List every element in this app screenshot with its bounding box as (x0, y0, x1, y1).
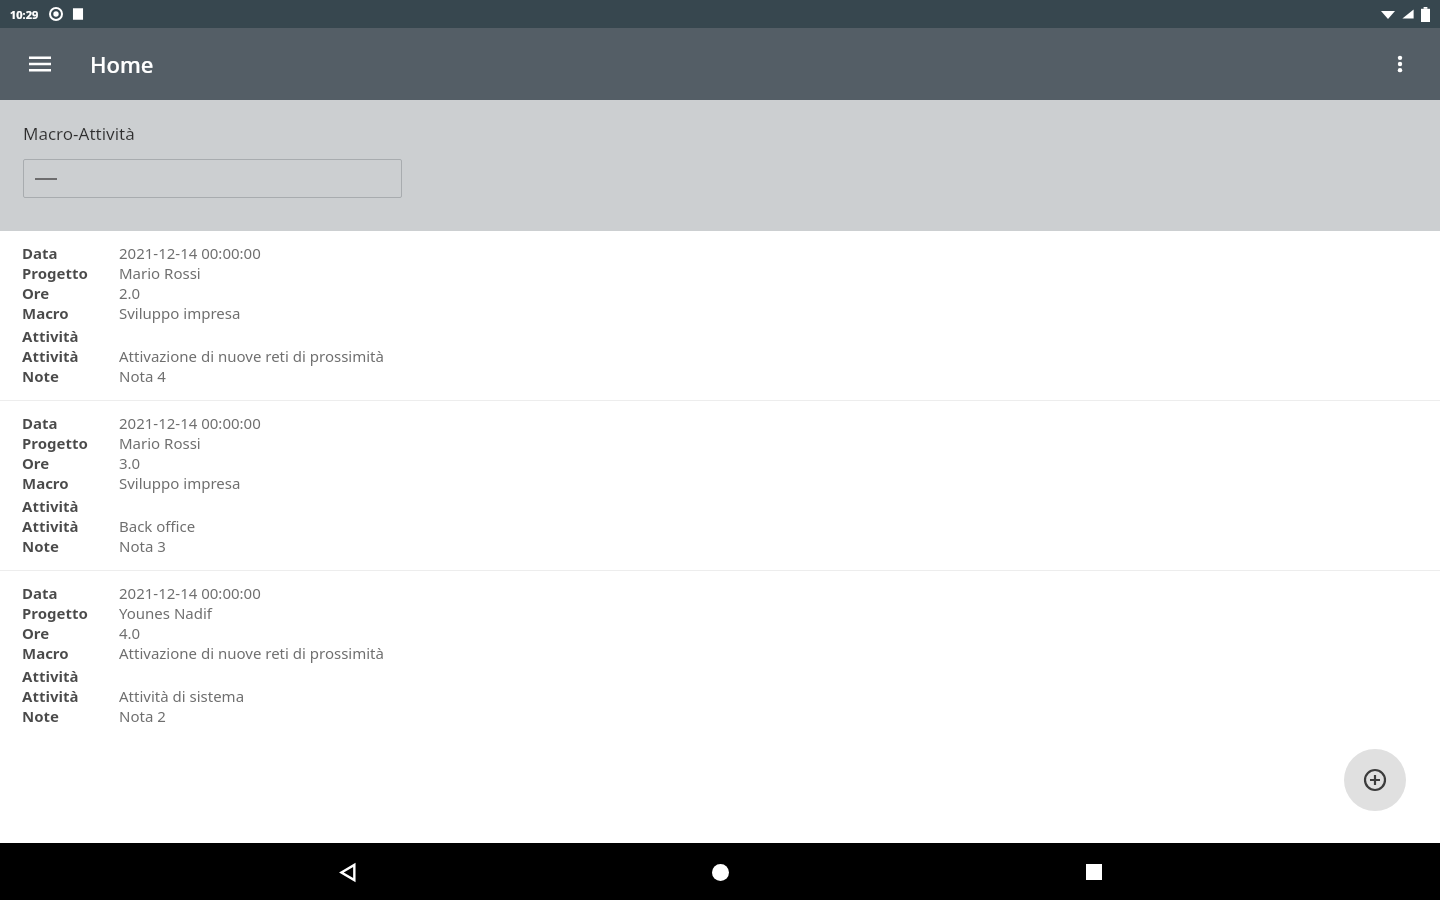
staticText: Progetto (22, 263, 88, 283)
staticText: Note (22, 366, 60, 386)
button[interactable]: More options (1374, 38, 1426, 90)
staticText: Attività (22, 346, 79, 366)
button[interactable]: Data (0, 231, 1440, 400)
staticText: Macro Attività (22, 643, 79, 686)
staticText: Ore (22, 283, 50, 303)
staticText: Progetto (22, 603, 88, 623)
staticText: Attivazione di nuove reti di prossimità (119, 643, 384, 663)
button[interactable]: Data (0, 401, 1440, 570)
staticText: Macro Attività (22, 303, 79, 346)
button[interactable]: Open navigation menu (14, 38, 66, 90)
staticText: 10:29 (10, 7, 39, 22)
staticText: Data (22, 583, 58, 603)
staticText: Nota 2 (119, 706, 166, 726)
staticText: 2.0 (119, 283, 141, 303)
staticText: Nota 4 (119, 366, 166, 386)
staticText: Attività (22, 516, 79, 536)
staticText: 4.0 (119, 623, 141, 643)
staticText: Mario Rossi (119, 433, 201, 453)
staticText: Macro-Attività (23, 122, 135, 145)
staticText: Attività di sistema (119, 686, 245, 706)
staticText: 2021-12-14 00:00:00 (119, 583, 261, 603)
staticText: 3.0 (119, 453, 141, 473)
staticText: Sviluppo impresa (119, 303, 241, 323)
button[interactable]: Recent apps (1067, 845, 1121, 899)
staticText: Data (22, 243, 58, 263)
staticText: 2021-12-14 00:00:00 (119, 413, 261, 433)
button[interactable]: Home (693, 845, 747, 899)
staticText: Macro Attività (22, 473, 79, 516)
button[interactable]: Data (0, 571, 1440, 740)
staticText: Ore (22, 453, 50, 473)
staticText: Attivazione di nuove reti di prossimità (119, 346, 384, 366)
staticText: Progetto (22, 433, 88, 453)
staticText: Note (22, 706, 60, 726)
staticText: Younes Nadif (119, 603, 212, 623)
staticText: Back office (119, 516, 196, 536)
staticText: Attività (22, 686, 79, 706)
staticText: Mario Rossi (119, 263, 201, 283)
staticText: Ore (22, 623, 50, 643)
staticText: Note (22, 536, 60, 556)
staticText: Home (90, 49, 154, 79)
button[interactable]: Add entry (1344, 749, 1406, 811)
button[interactable] (23, 159, 402, 198)
staticText: Data (22, 413, 58, 433)
staticText: Nota 3 (119, 536, 166, 556)
staticText: Sviluppo impresa (119, 473, 241, 493)
button[interactable]: Back (320, 845, 374, 899)
staticText: 2021-12-14 00:00:00 (119, 243, 261, 263)
